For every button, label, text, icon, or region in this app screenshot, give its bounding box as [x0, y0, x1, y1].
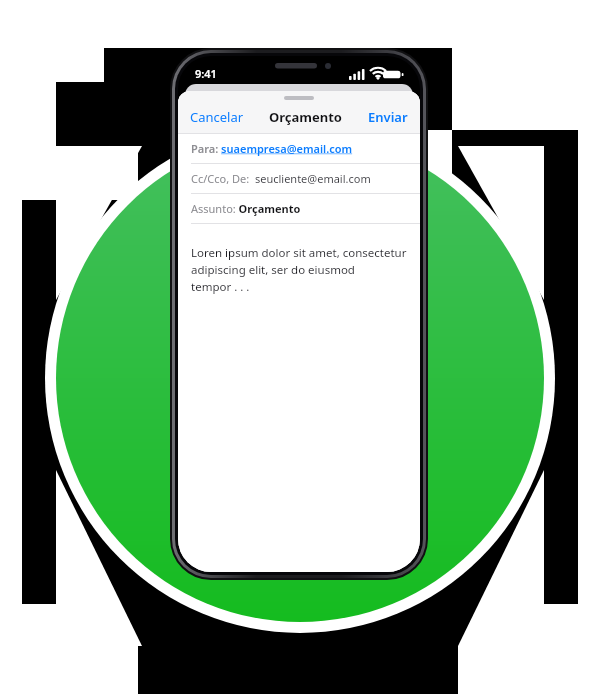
staticText: Orçamento — [269, 108, 342, 126]
staticText: Enviar — [368, 108, 408, 126]
button[interactable]: Loren ipsum dolor sit amet, consectetur … — [178, 224, 420, 572]
staticText: Loren ipsum dolor sit amet, consectetur … — [191, 245, 410, 295]
button[interactable]: Para: suaempresa@email.com — [178, 134, 420, 163]
staticText: Para: suaempresa@email.com — [191, 141, 353, 156]
button[interactable]: Assunto: Orçamento — [178, 194, 420, 223]
button[interactable]: Cc/Cco, De: seucliente@email.com — [178, 164, 420, 193]
staticText: 9:41 — [195, 66, 217, 81]
staticText: Cancelar — [190, 108, 244, 126]
other: Signal, Wi-Fi and battery status — [349, 69, 403, 80]
button[interactable]: Enviar — [365, 107, 411, 127]
staticText: Assunto: Orçamento — [191, 201, 301, 216]
staticText: Cc/Cco, De: seucliente@email.com — [191, 171, 371, 186]
button[interactable]: Cancelar — [187, 107, 247, 127]
